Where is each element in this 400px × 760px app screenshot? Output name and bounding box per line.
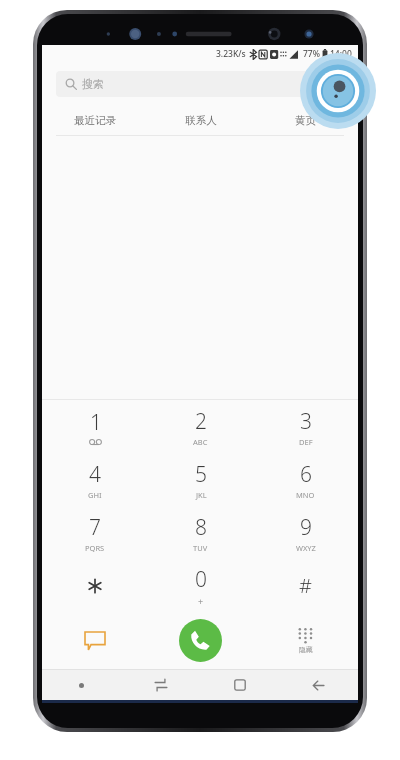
button[interactable]: Profile	[300, 53, 376, 129]
staticText: 联系人	[185, 114, 217, 127]
button[interactable]	[42, 559, 148, 612]
staticText: TUV	[193, 543, 208, 553]
staticText: #	[299, 572, 312, 599]
staticText: ABC	[193, 437, 208, 447]
button[interactable]: Menu dot	[42, 670, 121, 700]
button[interactable]: 5	[148, 453, 253, 506]
staticText: DEF	[299, 437, 313, 447]
staticText: 77%	[303, 48, 320, 60]
button[interactable]: 9	[253, 506, 358, 559]
button[interactable]: #	[253, 559, 358, 612]
staticText: +	[198, 595, 204, 607]
staticText: MNO	[296, 490, 315, 500]
button[interactable]: Message	[42, 612, 148, 669]
button[interactable]: Hide keypad	[253, 612, 358, 669]
button[interactable]: Call	[179, 619, 222, 662]
button[interactable]: Back	[279, 670, 358, 700]
button[interactable]: 3	[253, 400, 358, 453]
button[interactable]: 6	[253, 453, 358, 506]
button[interactable]: 搜索	[56, 71, 344, 97]
staticText: 搜索	[82, 77, 104, 91]
staticText: 0	[195, 565, 207, 594]
staticText: 5	[195, 460, 207, 489]
button[interactable]: 联系人	[148, 105, 253, 135]
staticText: 8	[195, 513, 207, 542]
staticText: 6	[300, 460, 312, 489]
staticText: 7	[89, 513, 101, 542]
staticText: PQRS	[85, 543, 105, 553]
button[interactable]: 黄页	[253, 105, 358, 135]
staticText: 最近记录	[74, 114, 116, 127]
staticText: 隐藏	[299, 645, 313, 654]
staticText: 1	[90, 408, 102, 437]
staticText: 3	[300, 407, 312, 436]
button[interactable]: 1	[42, 400, 148, 453]
button[interactable]: 0	[148, 559, 253, 612]
staticText: GHI	[88, 490, 102, 500]
staticText: 14:00	[330, 48, 352, 60]
button[interactable]: 2	[148, 400, 253, 453]
staticText: 9	[300, 513, 312, 542]
staticText: 黄页	[295, 114, 316, 127]
staticText: WXYZ	[296, 543, 316, 553]
button[interactable]: 4	[42, 453, 148, 506]
button[interactable]: Recents	[200, 670, 279, 700]
staticText: 2	[195, 407, 207, 436]
button[interactable]: 8	[148, 506, 253, 559]
button[interactable]: 7	[42, 506, 148, 559]
staticText: JKL	[196, 490, 207, 500]
staticText: 4	[89, 460, 101, 489]
button[interactable]: Switch	[121, 670, 200, 700]
button[interactable]: 最近记录	[42, 105, 148, 135]
staticText: 3.23K/s	[216, 48, 246, 60]
